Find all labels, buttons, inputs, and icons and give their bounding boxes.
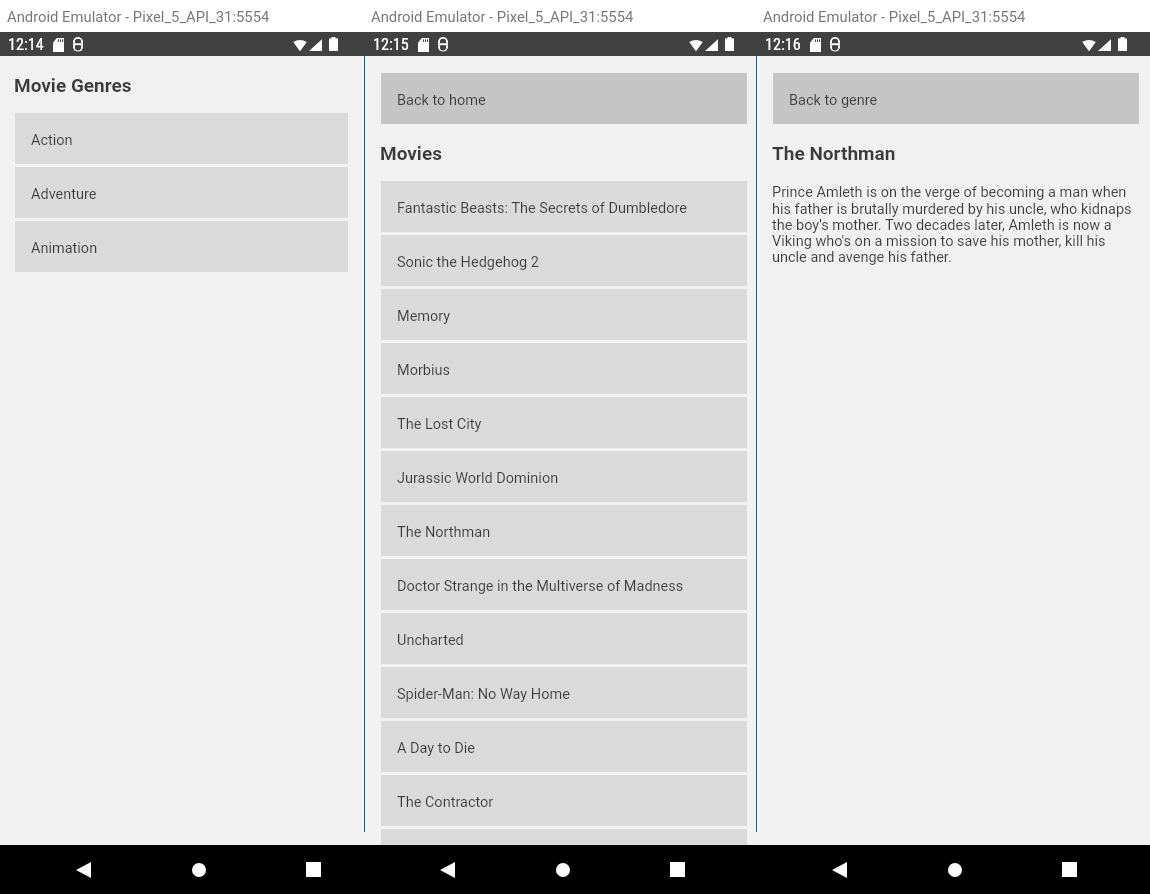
button[interactable]: Action — [15, 113, 348, 164]
staticText: Adventure — [31, 186, 97, 203]
staticText: Back to home — [397, 92, 486, 109]
staticText: 12:14 — [8, 35, 44, 54]
button[interactable]: Back to home — [381, 73, 747, 124]
button[interactable]: Back — [423, 845, 471, 894]
button[interactable]: Home — [175, 845, 223, 894]
staticText: The Northman — [772, 142, 896, 164]
staticText: Back to genre — [789, 92, 878, 109]
staticText: The Northman — [397, 524, 491, 541]
staticText: 12:16 — [765, 35, 801, 54]
button[interactable]: Home — [539, 845, 587, 894]
button[interactable]: Recents — [1045, 845, 1093, 894]
button[interactable]: The Northman — [381, 505, 747, 556]
button[interactable]: Jurassic World Dominion — [381, 451, 747, 502]
staticText: Android Emulator - Pixel_5_API_31:5554 — [371, 8, 634, 25]
staticText: Sonic the Hedgehog 2 — [397, 254, 539, 271]
staticText: Action — [31, 132, 73, 149]
staticText: Spider-Man: No Way Home — [397, 686, 570, 703]
staticText: Android Emulator - Pixel_5_API_31:5554 — [7, 8, 270, 25]
staticText: Prince Amleth is on the verge of becomin… — [772, 184, 1140, 265]
button[interactable]: Animation — [15, 221, 348, 272]
staticText: The Lost City — [397, 416, 482, 433]
button[interactable]: Memory — [381, 289, 747, 340]
staticText: The Contractor — [397, 794, 494, 811]
button[interactable]: Back to genre — [773, 73, 1139, 124]
button[interactable]: Spider-Man: No Way Home — [381, 667, 747, 718]
staticText: Movies — [380, 142, 442, 164]
button[interactable]: Morbius — [381, 343, 747, 394]
button[interactable]: Doctor Strange in the Multiverse of Madn… — [381, 559, 747, 610]
button[interactable]: The Lost City — [381, 397, 747, 448]
button[interactable]: Back — [815, 845, 863, 894]
staticText: Memory — [397, 308, 451, 325]
button[interactable]: The Contractor — [381, 775, 747, 826]
staticText: Morbius — [397, 362, 450, 379]
staticText: Doctor Strange in the Multiverse of Madn… — [397, 578, 684, 595]
button[interactable]: Recents — [289, 845, 337, 894]
staticText: Fantastic Beasts: The Secrets of Dumbled… — [397, 200, 687, 217]
staticText: Movie Genres — [14, 74, 132, 96]
button[interactable]: A Day to Die — [381, 721, 747, 772]
staticText: Android Emulator - Pixel_5_API_31:5554 — [763, 8, 1026, 25]
button[interactable]: Sonic the Hedgehog 2 — [381, 235, 747, 286]
button[interactable]: Uncharted — [381, 613, 747, 664]
staticText: Animation — [31, 240, 98, 257]
staticText: A Day to Die — [397, 740, 476, 757]
button[interactable]: Adventure — [15, 167, 348, 218]
staticText: Jurassic World Dominion — [397, 470, 559, 487]
staticText: 12:15 — [373, 35, 409, 54]
button[interactable]: Home — [931, 845, 979, 894]
button[interactable]: Back — [59, 845, 107, 894]
button[interactable]: Recents — [653, 845, 701, 894]
staticText: Uncharted — [397, 632, 464, 649]
button[interactable]: Fantastic Beasts: The Secrets of Dumbled… — [381, 181, 747, 232]
